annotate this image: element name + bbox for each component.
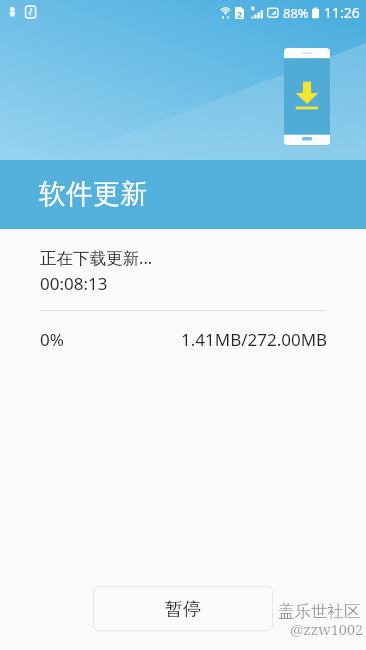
staticText: 00:08:13 bbox=[40, 272, 108, 295]
staticText: 1.41MB/272.00MB bbox=[181, 328, 328, 351]
staticText: 盖乐世社区 bbox=[278, 601, 361, 622]
staticText: 2 bbox=[237, 8, 243, 20]
staticText: 正在下载更新... bbox=[40, 246, 153, 269]
staticText: 88% bbox=[283, 4, 309, 22]
other: Notifications bbox=[0, 0, 366, 25]
staticText: 0% bbox=[40, 328, 64, 351]
button[interactable]: 暂停 bbox=[93, 586, 273, 631]
staticText: 软件更新 bbox=[39, 177, 147, 211]
staticText: 暂停 bbox=[165, 598, 201, 621]
staticText: 11:26 bbox=[324, 3, 360, 22]
staticText: @zzw1002 bbox=[290, 619, 364, 639]
